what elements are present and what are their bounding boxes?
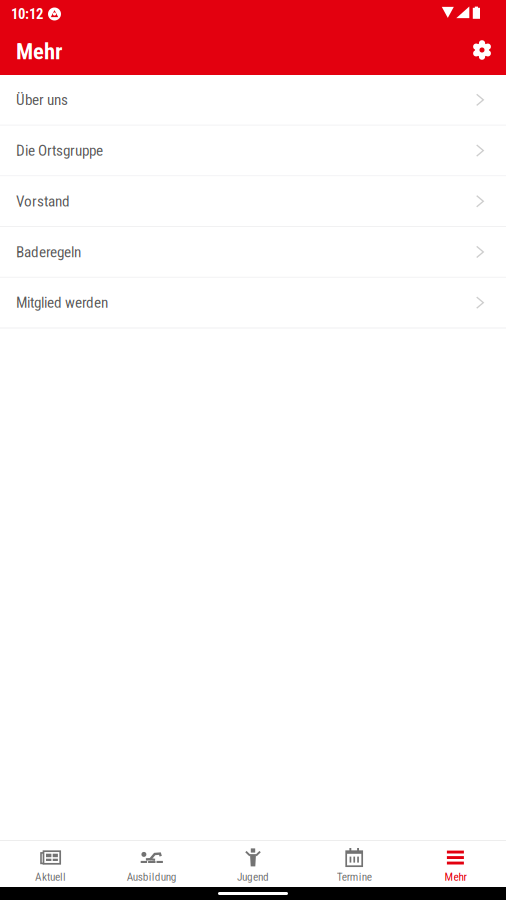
staticText: Termine	[337, 870, 372, 883]
button[interactable]: Mehr	[405, 841, 506, 887]
button[interactable]: Termine	[304, 841, 405, 887]
staticText: Ausbildung	[127, 870, 177, 883]
button[interactable]: Über uns	[0, 75, 506, 126]
staticText: Mehr	[444, 870, 466, 883]
staticText: 10:12	[11, 5, 43, 23]
button[interactable]: Mitglied werden	[0, 278, 506, 328]
button[interactable]: Ausbildung	[101, 841, 202, 887]
button[interactable]: Aktuell	[0, 841, 101, 887]
button[interactable]: Vorstand	[0, 176, 506, 227]
staticText: Baderegeln	[16, 243, 81, 261]
staticText: Aktuell	[35, 870, 66, 883]
button[interactable]: Einstellungen	[458, 28, 506, 75]
staticText: Die Ortsgruppe	[16, 142, 103, 159]
button[interactable]: Jugend	[202, 841, 304, 887]
staticText: Jugend	[237, 870, 269, 883]
button[interactable]: Die Ortsgruppe	[0, 126, 506, 176]
staticText: Vorstand	[16, 192, 70, 210]
button[interactable]: Baderegeln	[0, 227, 506, 278]
staticText: Mehr	[16, 38, 63, 65]
staticText: Mitglied werden	[16, 294, 108, 311]
staticText: Über uns	[16, 91, 68, 109]
